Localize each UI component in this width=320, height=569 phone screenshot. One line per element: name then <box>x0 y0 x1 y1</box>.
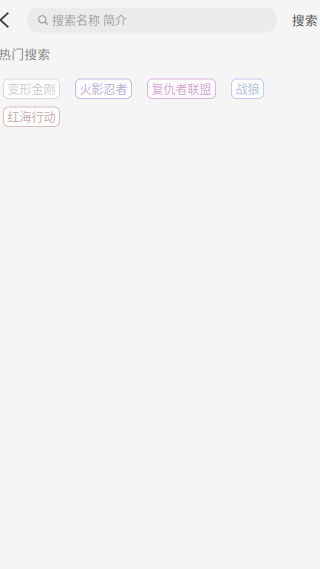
button[interactable]: 复仇者联盟 <box>147 79 215 98</box>
button[interactable]: 搜索 <box>292 3 320 37</box>
button[interactable]: 变形金刚 <box>3 79 59 98</box>
button[interactable]: 火影忍者 <box>75 79 131 98</box>
staticText: 变形金刚 <box>7 80 55 97</box>
staticText: 战狼 <box>235 80 259 97</box>
staticText: 热门搜索 <box>0 45 50 63</box>
button[interactable]: Back <box>0 3 12 37</box>
staticText: 火影忍者 <box>79 80 127 97</box>
button[interactable]: 战狼 <box>231 79 263 98</box>
staticText: 搜索 <box>292 11 318 29</box>
staticText: 红海行动 <box>7 108 55 125</box>
staticText: 复仇者联盟 <box>151 80 211 97</box>
staticText: 搜索名称 简介 <box>52 11 127 29</box>
button[interactable]: 红海行动 <box>3 107 59 126</box>
